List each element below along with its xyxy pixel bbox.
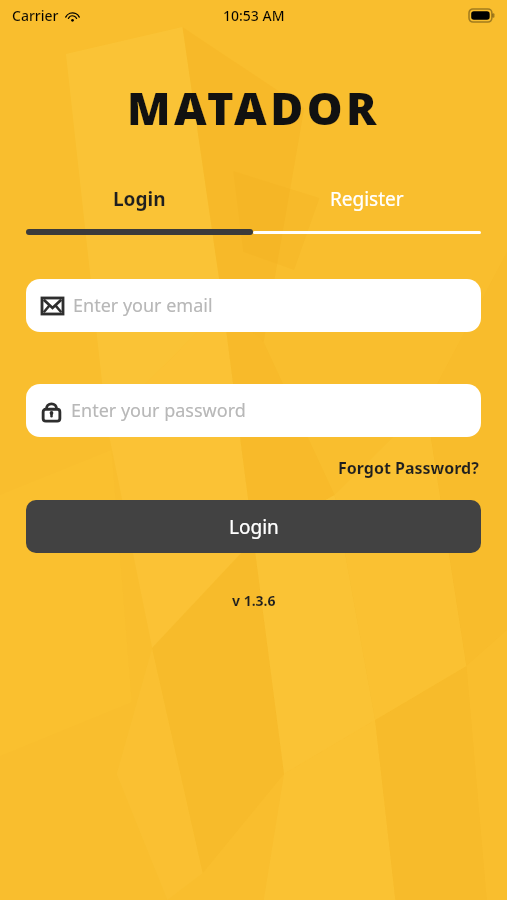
button[interactable]: Password input field [26, 384, 481, 437]
staticText: Enter your password [71, 398, 246, 423]
staticText: MATADOR [127, 77, 381, 138]
staticText: Enter your email [73, 293, 213, 318]
button[interactable]: Register [253, 182, 481, 216]
staticText: Carrier [12, 6, 59, 25]
staticText: Forgot Password? [338, 457, 479, 479]
staticText: 10:53 AM [223, 6, 285, 25]
button[interactable]: Login [26, 182, 253, 216]
staticText: v 1.3.6 [232, 591, 276, 610]
staticText: Register [330, 186, 404, 212]
button[interactable]: Login [26, 500, 481, 553]
staticText: Login [229, 514, 279, 540]
staticText: Login [113, 186, 166, 212]
button[interactable]: Forgot Password? [336, 455, 481, 481]
button[interactable]: Email input field [26, 279, 481, 332]
